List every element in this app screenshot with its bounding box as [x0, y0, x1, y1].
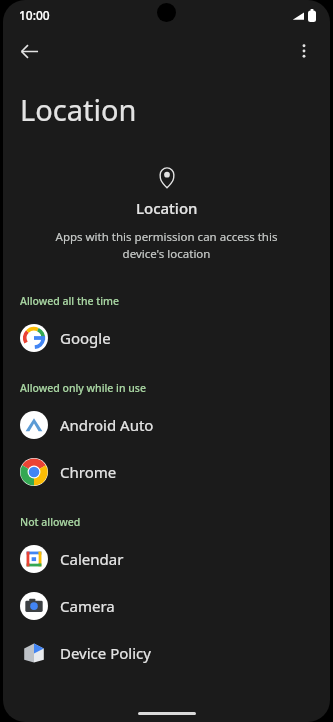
button[interactable]: Chrome [3, 448, 330, 495]
staticText: Location [136, 198, 198, 218]
button[interactable]: Calendar [3, 535, 330, 582]
staticText: Chrome [60, 462, 117, 482]
button[interactable]: More options [284, 31, 324, 71]
button[interactable]: Camera [3, 582, 330, 629]
staticText: Allowed only while in use [20, 381, 146, 395]
staticText: Not allowed [20, 515, 81, 529]
staticText: Location [20, 90, 137, 129]
staticText: Calendar [60, 549, 124, 569]
button[interactable]: Back [9, 31, 49, 71]
staticText: 10:00 [19, 7, 50, 23]
staticText: Device Policy [60, 643, 151, 663]
staticText: Allowed all the time [20, 294, 120, 308]
button[interactable]: Device Policy [3, 629, 330, 676]
staticText: Google [60, 328, 111, 348]
staticText: Apps with this permission can access thi… [51, 229, 282, 261]
button[interactable]: Android Auto [3, 401, 330, 448]
staticText: Camera [60, 596, 115, 616]
button[interactable]: Google [3, 314, 330, 361]
staticText: Android Auto [60, 415, 154, 435]
